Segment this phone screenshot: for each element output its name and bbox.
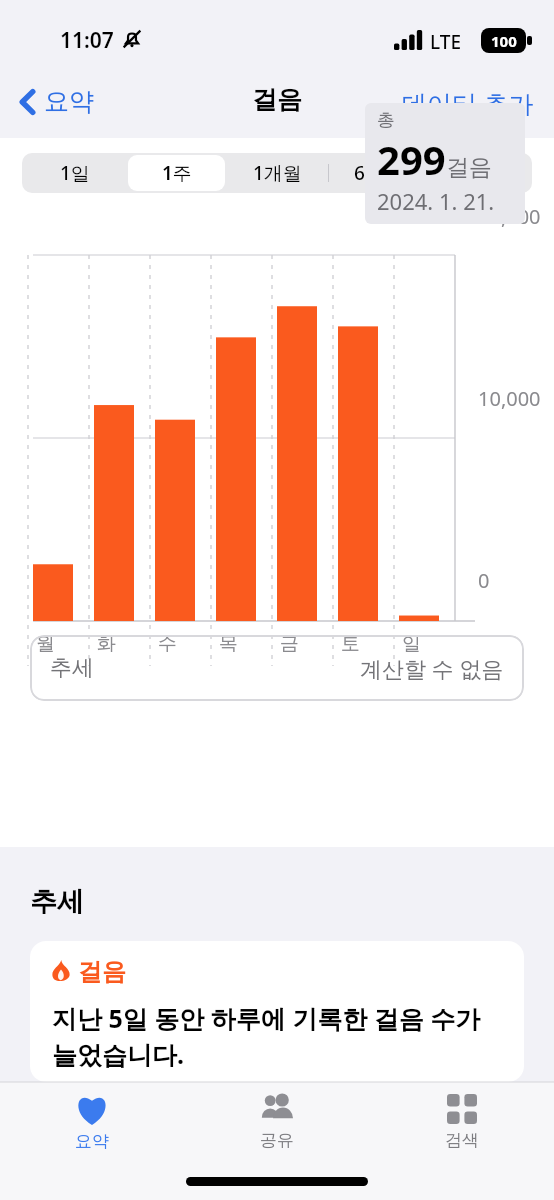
staticText: 6개월: [354, 160, 403, 186]
other: 검색: [447, 1094, 477, 1124]
staticText: 금: [280, 632, 299, 656]
staticText: 월: [36, 632, 55, 656]
staticText: 계산할 수 없음: [360, 653, 504, 683]
staticText: 299: [377, 132, 446, 186]
staticText: 100: [491, 31, 517, 51]
other: 공유: [257, 1094, 297, 1124]
button[interactable]: 1개월: [227, 155, 328, 191]
button[interactable]: 1일: [24, 155, 126, 191]
staticText: 0: [478, 567, 490, 594]
staticText: 걸음: [446, 153, 492, 182]
staticText: 1주: [162, 160, 192, 186]
staticText: LTE: [430, 29, 462, 55]
staticText: 1개월: [253, 160, 302, 186]
button[interactable]: 6개월: [328, 155, 429, 191]
staticText: 걸음: [0, 84, 554, 115]
button[interactable]: 1주: [128, 155, 225, 191]
staticText: 공유: [260, 1130, 294, 1151]
staticText: 화: [97, 632, 116, 656]
staticText: 추세: [30, 885, 84, 919]
staticText: 데이터 추가: [402, 86, 534, 120]
staticText: 총: [377, 109, 395, 132]
button[interactable]: 공유: [184, 1082, 369, 1157]
staticText: 20,000: [478, 203, 541, 230]
staticText: 추세: [50, 654, 94, 682]
button[interactable]: 데이터 추가: [396, 82, 540, 124]
staticText: 2024. 1. 21.: [377, 186, 495, 216]
staticText: 지난 5일 동안 하루에 기록한 걸음 수가 늘었습니다.: [52, 1001, 506, 1072]
button[interactable]: 요약: [14, 82, 100, 121]
staticText: 수: [158, 632, 177, 656]
staticText: 목: [219, 632, 238, 656]
staticText: 11:07: [60, 26, 114, 55]
other: 요약: [75, 1094, 109, 1125]
button[interactable]: 요약: [0, 1082, 184, 1157]
button[interactable]: 검색: [369, 1082, 554, 1157]
staticText: 토: [341, 632, 360, 656]
staticText: 걸음: [78, 957, 126, 987]
staticText: 검색: [445, 1130, 479, 1151]
staticText: 일: [402, 632, 421, 656]
staticText: 10,000: [478, 385, 541, 412]
staticText: 1년: [465, 160, 495, 186]
button[interactable]: 걸음: [30, 941, 524, 1082]
button[interactable]: 추세: [30, 635, 524, 701]
button[interactable]: 1년: [429, 155, 530, 191]
staticText: 요약: [44, 86, 94, 117]
staticText: 요약: [75, 1131, 109, 1152]
staticText: 1일: [60, 160, 90, 186]
